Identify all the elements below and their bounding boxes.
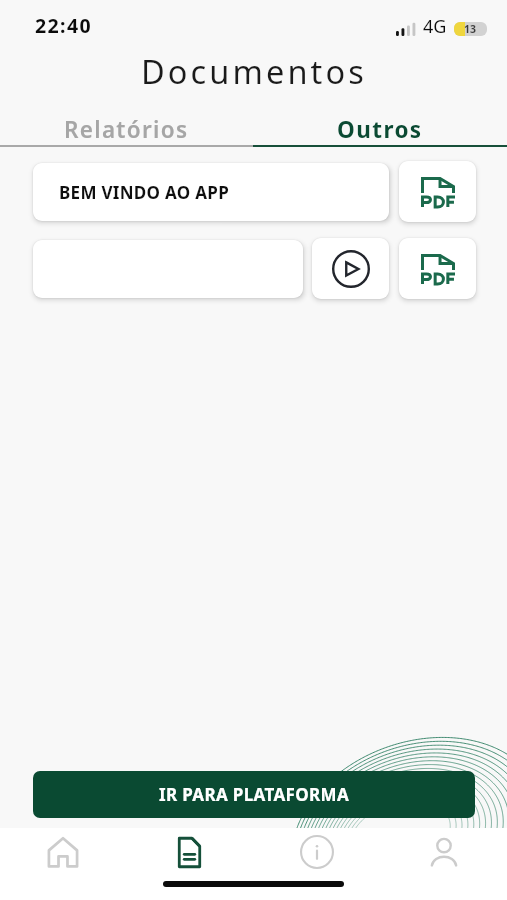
staticText: 4G	[423, 14, 447, 39]
staticText: BEM VINDO AO APP	[59, 181, 230, 204]
staticText: Relatórios	[64, 114, 189, 145]
button[interactable]: Play video	[312, 238, 389, 299]
staticText: 13	[464, 22, 477, 36]
staticText: Documentos	[141, 49, 367, 93]
button[interactable]: Information	[253, 828, 380, 876]
staticText: Outros	[337, 114, 423, 145]
button[interactable]: BEM VINDO AO APP	[33, 163, 389, 221]
button[interactable]: Home	[0, 828, 126, 876]
staticText: 22:40	[35, 12, 93, 39]
button[interactable]: Outros	[253, 98, 507, 145]
button[interactable]: Open PDF	[399, 238, 476, 299]
button[interactable]: Profile	[380, 828, 507, 876]
staticText: IR PARA PLATAFORMA	[159, 783, 350, 806]
button[interactable]: Open PDF	[399, 161, 476, 222]
button[interactable]: Documents	[126, 828, 253, 876]
button[interactable]: Relatórios	[0, 98, 253, 145]
button[interactable]: IR PARA PLATAFORMA	[33, 771, 475, 818]
